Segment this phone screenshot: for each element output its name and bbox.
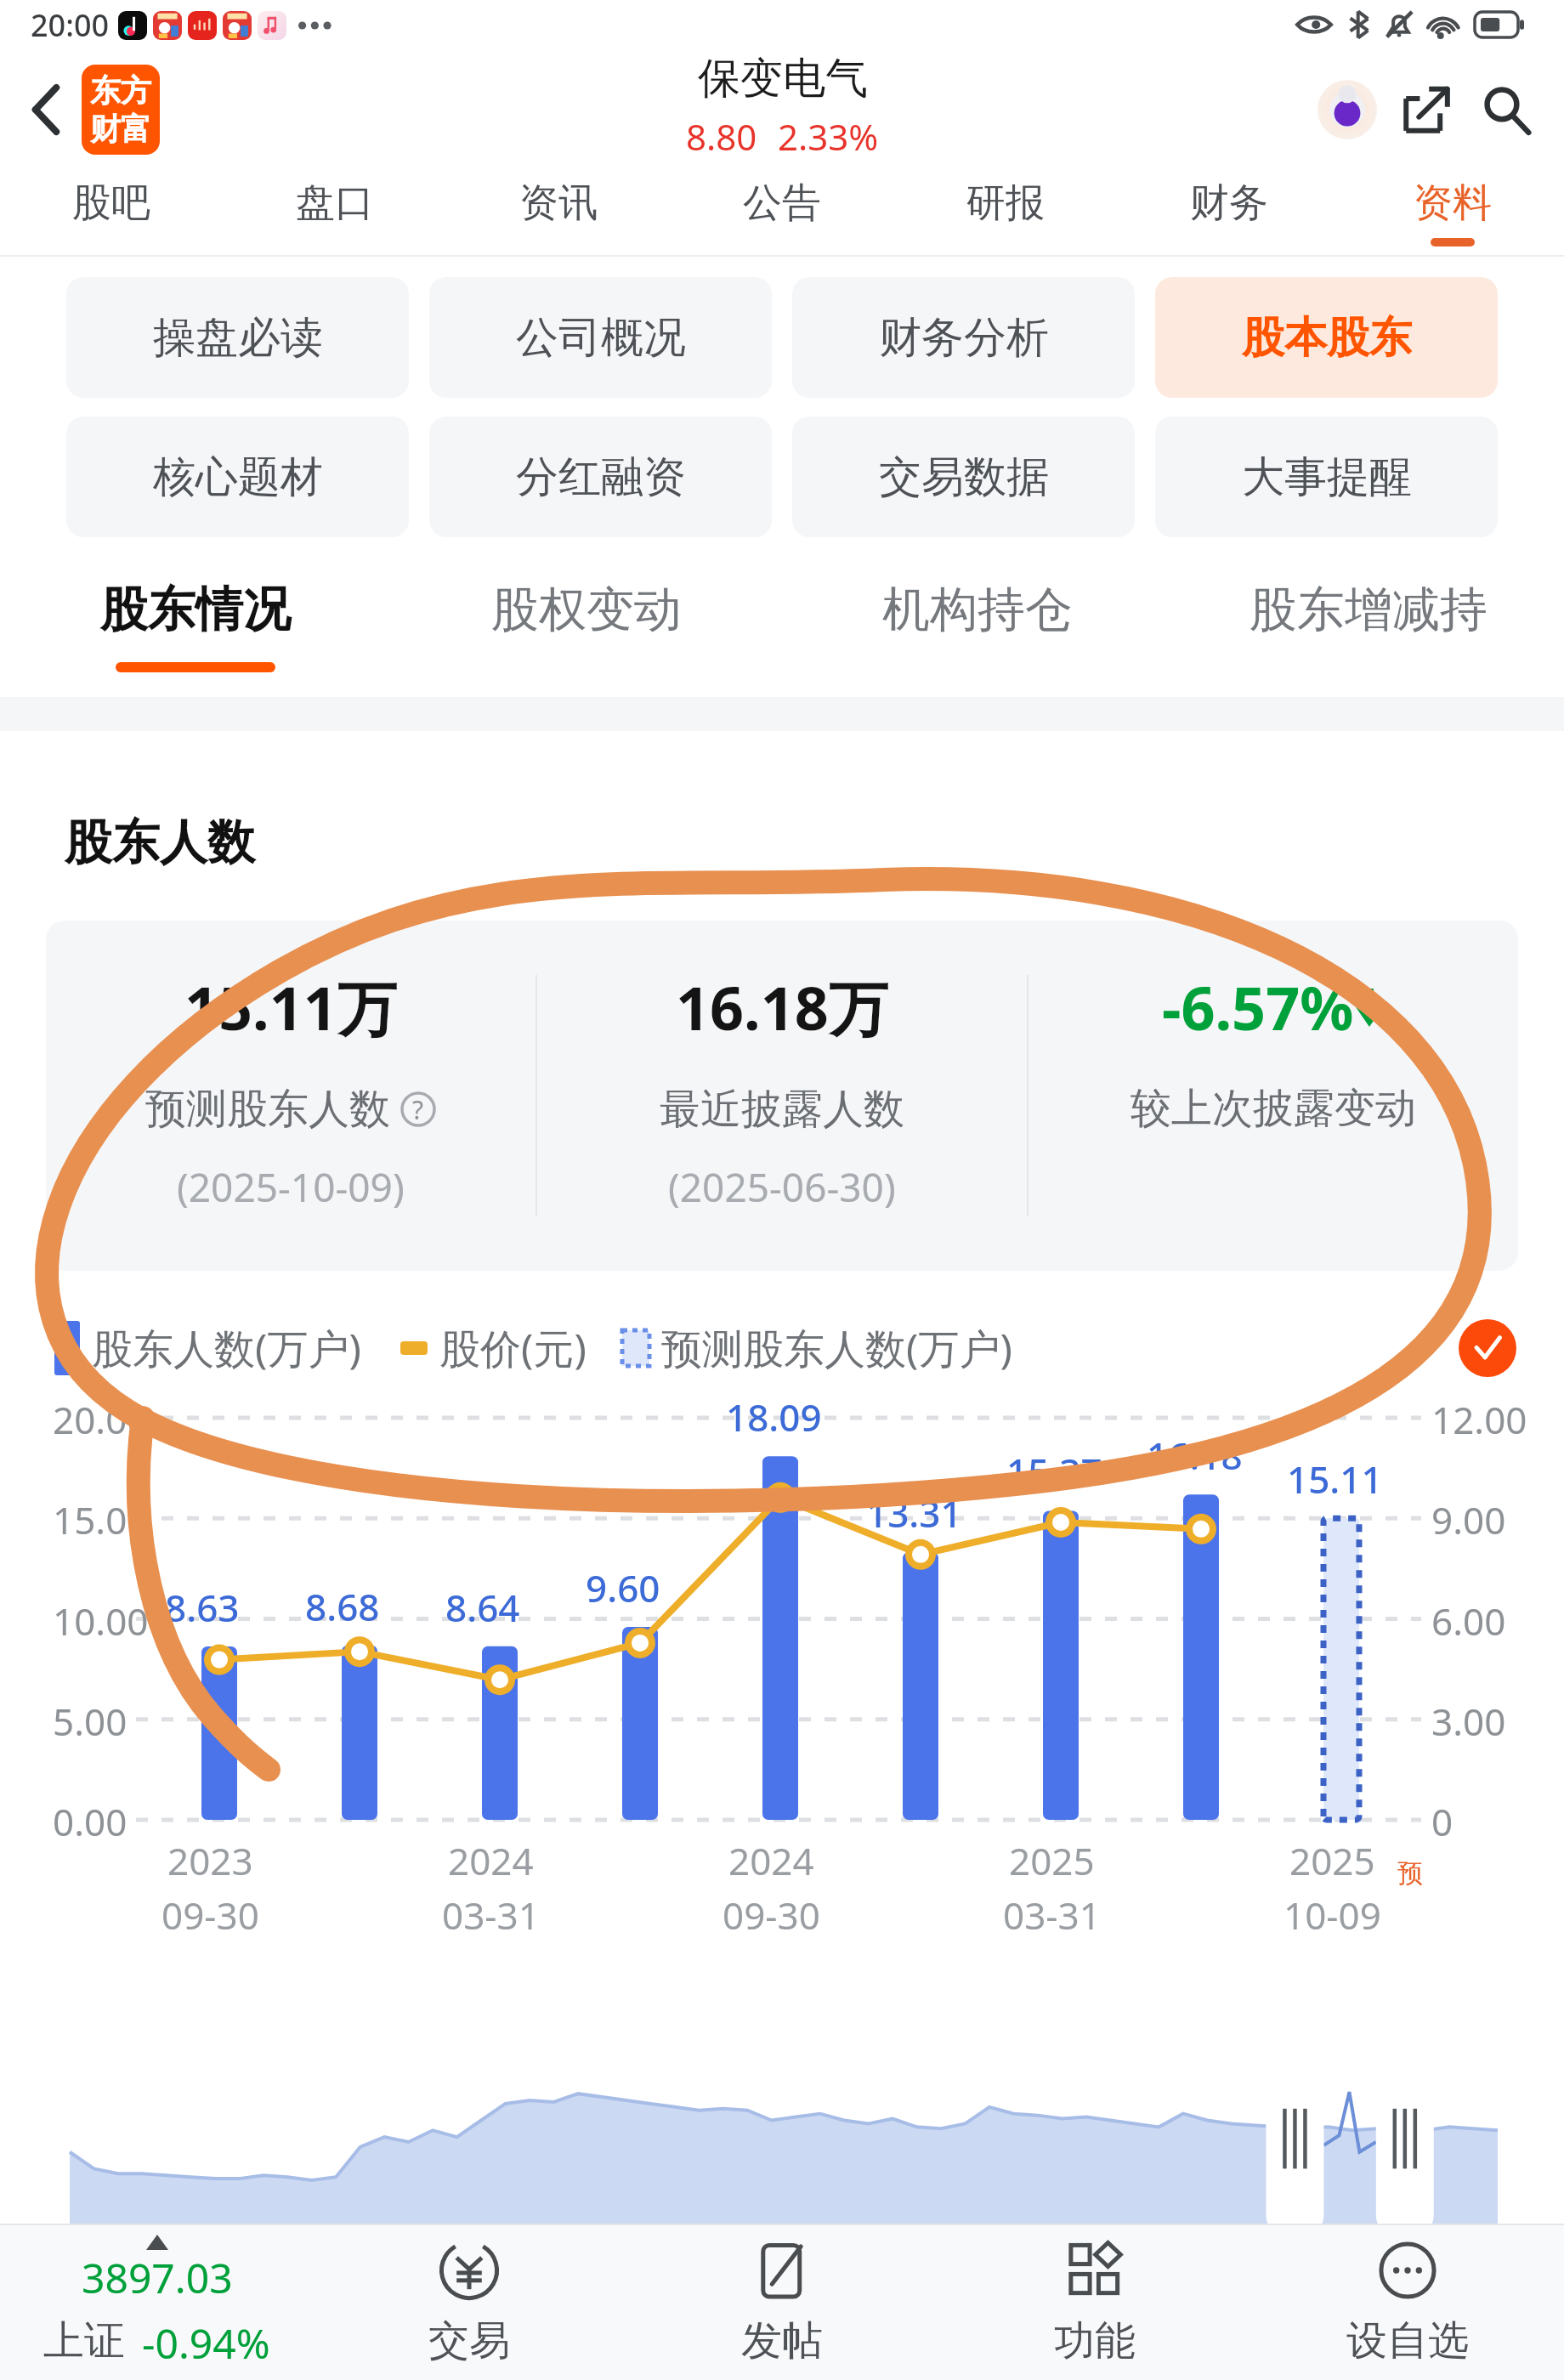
staticText: 2023 <box>167 1835 253 1886</box>
button[interactable]: 资讯 <box>446 170 670 255</box>
button[interactable]: 股吧 <box>0 170 223 255</box>
staticText: 10.00 <box>53 1595 149 1646</box>
button[interactable]: 确认 <box>1459 1319 1516 1377</box>
button[interactable]: 功能 <box>938 2225 1251 2380</box>
staticText: 股吧 <box>72 178 150 228</box>
staticText: 16.18万 <box>676 966 888 1048</box>
staticText: 预 <box>1397 1857 1423 1890</box>
button[interactable]: 15.11万 <box>46 921 1518 1271</box>
button[interactable]: 分红融资 <box>429 416 772 537</box>
staticText: 发帖 <box>741 2315 823 2366</box>
staticText: 2.33% <box>778 112 879 161</box>
staticText: 公告 <box>743 178 821 228</box>
button[interactable]: 研报 <box>893 170 1117 255</box>
staticText: 3897.03 <box>82 2250 233 2305</box>
staticText: 9.60 <box>586 1562 660 1613</box>
staticText: 预测股东人数(万户) <box>661 1320 1012 1376</box>
staticText: 保变电气 <box>698 52 868 105</box>
button[interactable]: 股本股东 <box>1155 277 1498 398</box>
staticText: 预测股东人数 <box>145 1084 390 1135</box>
button[interactable]: 发帖 <box>626 2225 938 2380</box>
staticText: 最近披露人数 <box>660 1084 904 1135</box>
staticText: 2025 <box>1289 1835 1375 1886</box>
staticText: 15.00 <box>53 1494 149 1545</box>
button[interactable]: AI 助手 <box>1311 73 1384 146</box>
button[interactable]: 交易 <box>313 2225 626 2380</box>
button[interactable]: 财务 <box>1117 170 1340 255</box>
staticText: 核心题材 <box>153 450 323 504</box>
staticText: 机构持仓 <box>882 580 1073 640</box>
button[interactable]: 返回 <box>10 74 82 145</box>
staticText: 18.09 <box>726 1391 822 1442</box>
staticText: 20.00 <box>53 1394 149 1445</box>
staticText: 09-30 <box>722 1890 820 1941</box>
staticText: 上证 <box>43 2315 125 2366</box>
staticText: 6.00 <box>1431 1595 1506 1646</box>
staticText: 15.11万 <box>184 966 397 1048</box>
staticText: 2024 <box>728 1835 814 1886</box>
staticText: 20:00 <box>31 4 110 46</box>
staticText: 10-09 <box>1283 1890 1381 1941</box>
staticText: 大事提醒 <box>1242 450 1412 504</box>
button[interactable]: 财务分析 <box>792 277 1135 398</box>
button[interactable]: 搜索 <box>1467 71 1545 149</box>
staticText: -0.94% <box>142 2315 270 2371</box>
staticText: 股本股东 <box>1242 311 1412 365</box>
staticText: 股东人数(万户) <box>92 1320 361 1376</box>
staticText: 5.00 <box>53 1696 127 1747</box>
staticText: 8.68 <box>305 1581 380 1632</box>
staticText: 2025 <box>1009 1835 1095 1886</box>
button[interactable]: 东方 <box>82 65 160 155</box>
button[interactable]: 操盘必读 <box>66 277 409 398</box>
button[interactable]: 股权变动 <box>391 561 782 690</box>
staticText: 资料 <box>1414 178 1492 228</box>
staticText: 8.64 <box>445 1582 520 1633</box>
button[interactable]: 盘口 <box>223 170 446 255</box>
staticText: 09-30 <box>161 1890 259 1941</box>
staticText: 东方 <box>90 71 151 110</box>
staticText: 资讯 <box>519 178 598 228</box>
staticText: 功能 <box>1054 2315 1136 2366</box>
button[interactable]: 交易数据 <box>792 416 1135 537</box>
staticText: 操盘必读 <box>153 311 323 365</box>
staticText: 交易数据 <box>879 450 1049 504</box>
staticText: 财务 <box>1190 178 1268 228</box>
button[interactable]: 大事提醒 <box>1155 416 1498 537</box>
staticText: (2025-10-09) <box>177 1160 405 1214</box>
button[interactable]: 股东增减持 <box>1173 561 1564 690</box>
staticText: 0.00 <box>53 1796 127 1847</box>
staticText: 公司概况 <box>516 311 686 365</box>
staticText: 研报 <box>966 178 1045 228</box>
staticText: 2024 <box>448 1835 534 1886</box>
staticText: 股东情况 <box>100 580 291 640</box>
staticText: 03-31 <box>442 1890 540 1941</box>
button[interactable]: 核心题材 <box>66 416 409 537</box>
staticText: 股权变动 <box>491 580 682 640</box>
staticText: 15.37 <box>1006 1446 1102 1497</box>
button[interactable]: 机构持仓 <box>782 561 1173 690</box>
staticText: 8.80 <box>686 112 757 161</box>
staticText: 设自选 <box>1346 2315 1469 2366</box>
staticText: -6.57% <box>1162 966 1354 1047</box>
button[interactable]: 股东情况 <box>0 561 391 690</box>
staticText: 股东增减持 <box>1249 580 1487 640</box>
button[interactable]: 分享 <box>1387 71 1465 149</box>
button[interactable]: 3897.03 <box>0 2225 313 2380</box>
staticText: 交易 <box>428 2315 510 2366</box>
staticText: 较上次披露变动 <box>1130 1083 1416 1134</box>
staticText: 3.00 <box>1431 1696 1506 1747</box>
staticText: 9.00 <box>1431 1494 1506 1545</box>
button[interactable]: 公告 <box>670 170 893 255</box>
button[interactable]: 资料 <box>1340 170 1564 255</box>
staticText: 12.00 <box>1431 1394 1527 1445</box>
staticText: 16.18 <box>1147 1430 1243 1481</box>
staticText: 0 <box>1431 1796 1453 1847</box>
staticText: 8.63 <box>165 1582 240 1633</box>
button[interactable]: 公司概况 <box>429 277 772 398</box>
staticText: 股东人数 <box>65 813 255 873</box>
staticText: 盘口 <box>296 178 374 228</box>
staticText: 分红融资 <box>516 450 686 504</box>
staticText: 03-31 <box>1003 1890 1101 1941</box>
button[interactable]: 设自选 <box>1251 2225 1564 2380</box>
staticText: 财富 <box>90 110 151 148</box>
